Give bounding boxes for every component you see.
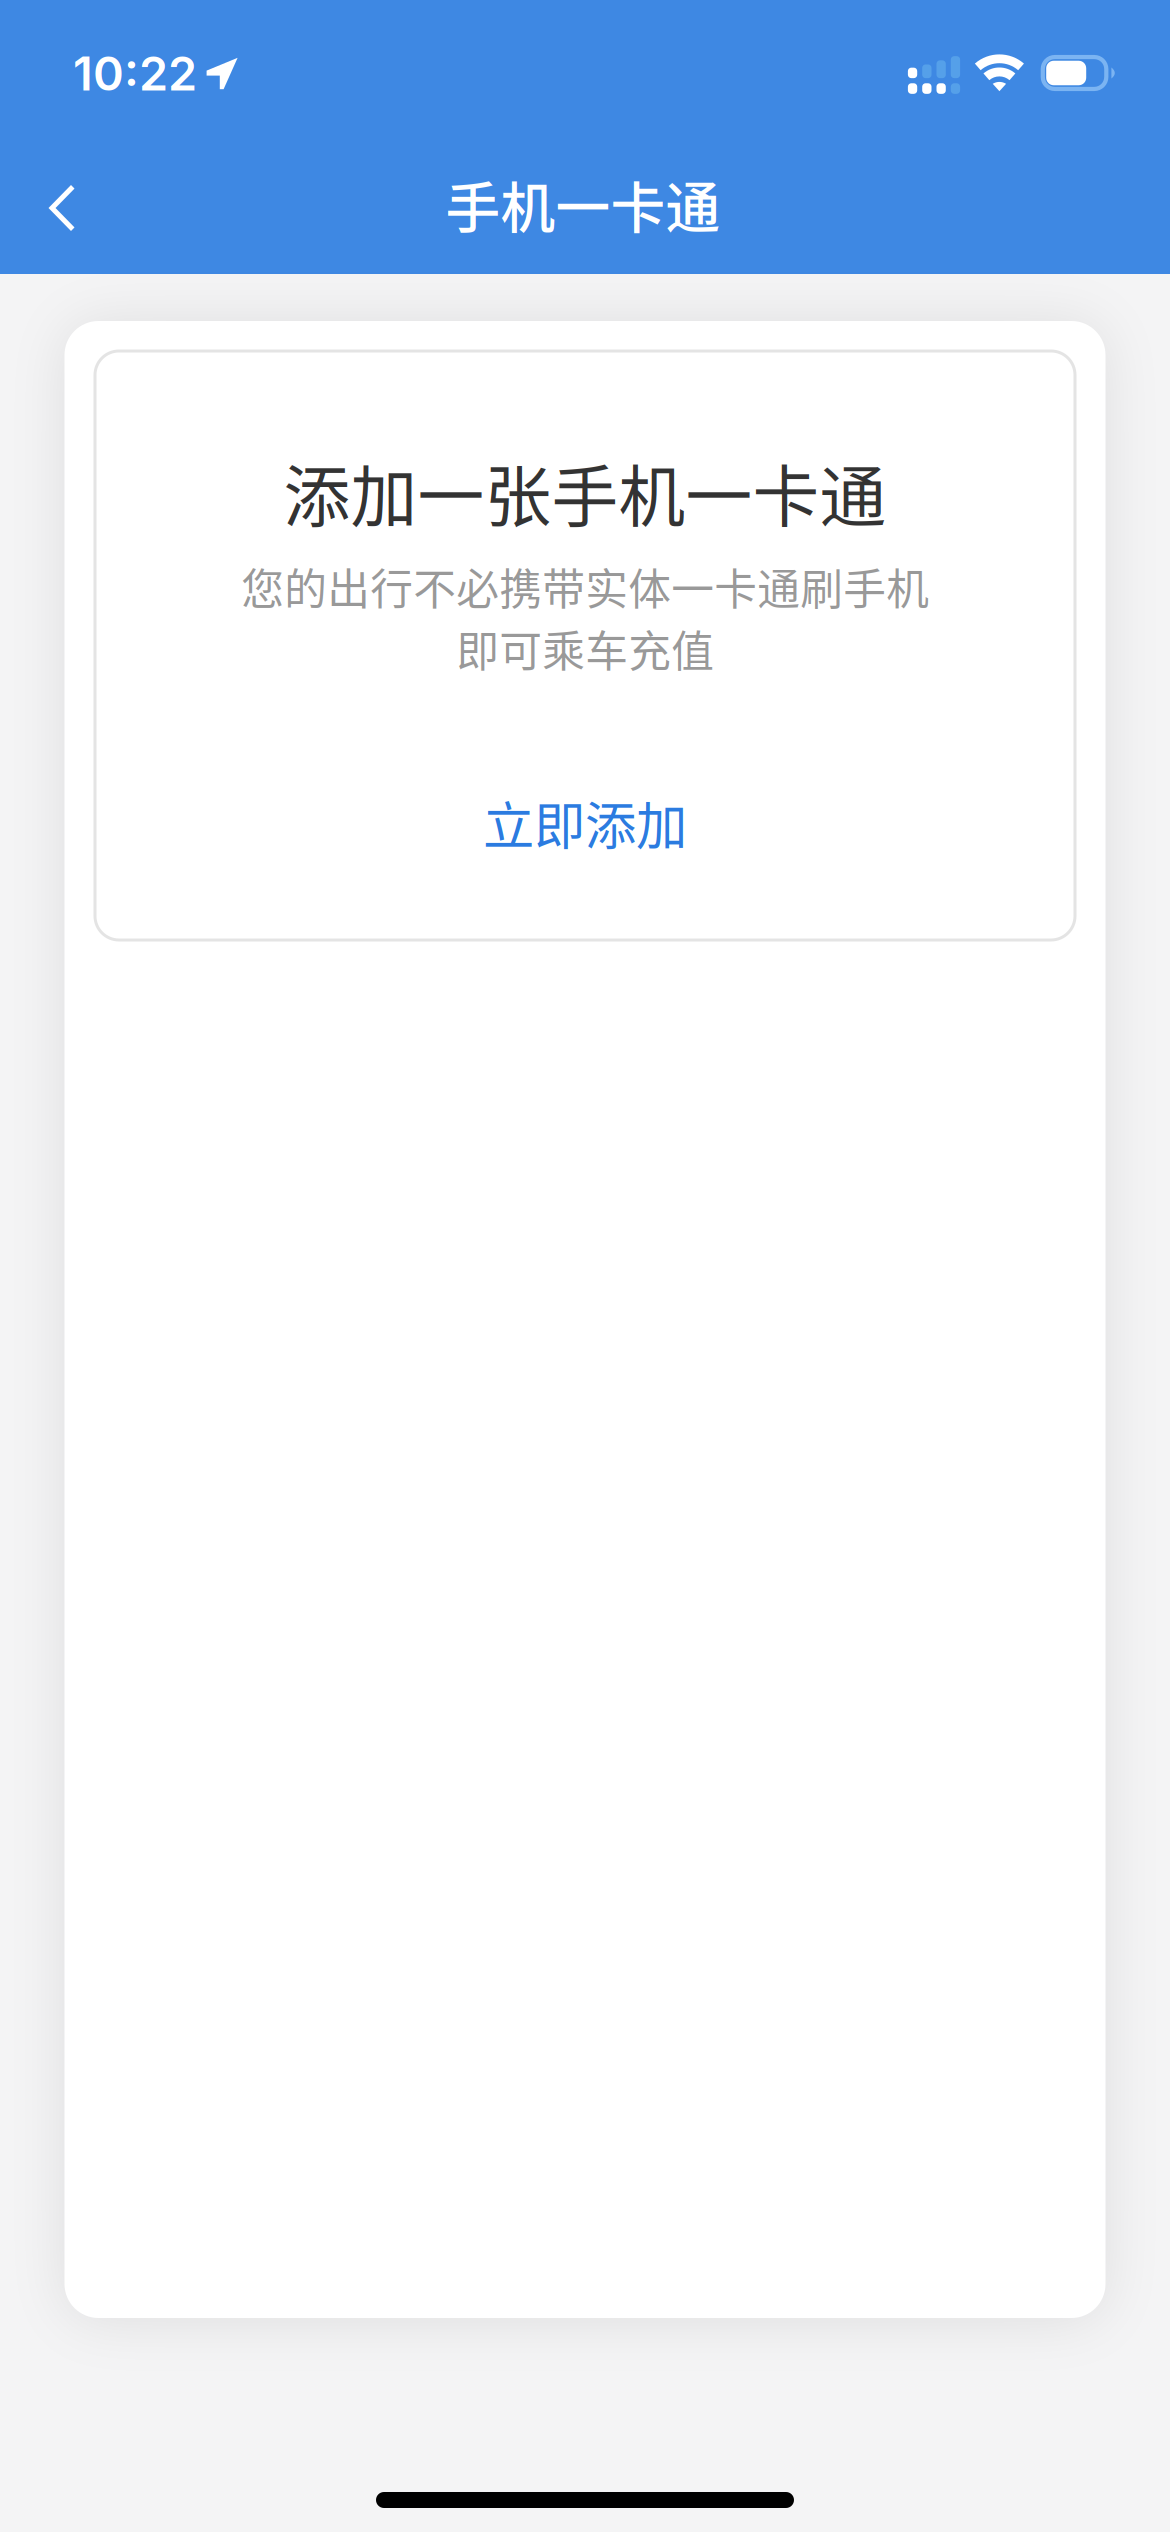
staticText: 您的出行不必携带实体一卡通刷手机 即可乘车充值	[241, 556, 929, 679]
button[interactable]: 立即添加	[393, 760, 777, 884]
staticText: 立即添加	[483, 785, 687, 859]
button[interactable]: 返回	[0, 142, 123, 274]
staticText: 添加一张手机一卡通	[283, 444, 886, 541]
staticText: 10:22	[73, 45, 197, 102]
staticText: 手机一卡通	[445, 164, 720, 244]
